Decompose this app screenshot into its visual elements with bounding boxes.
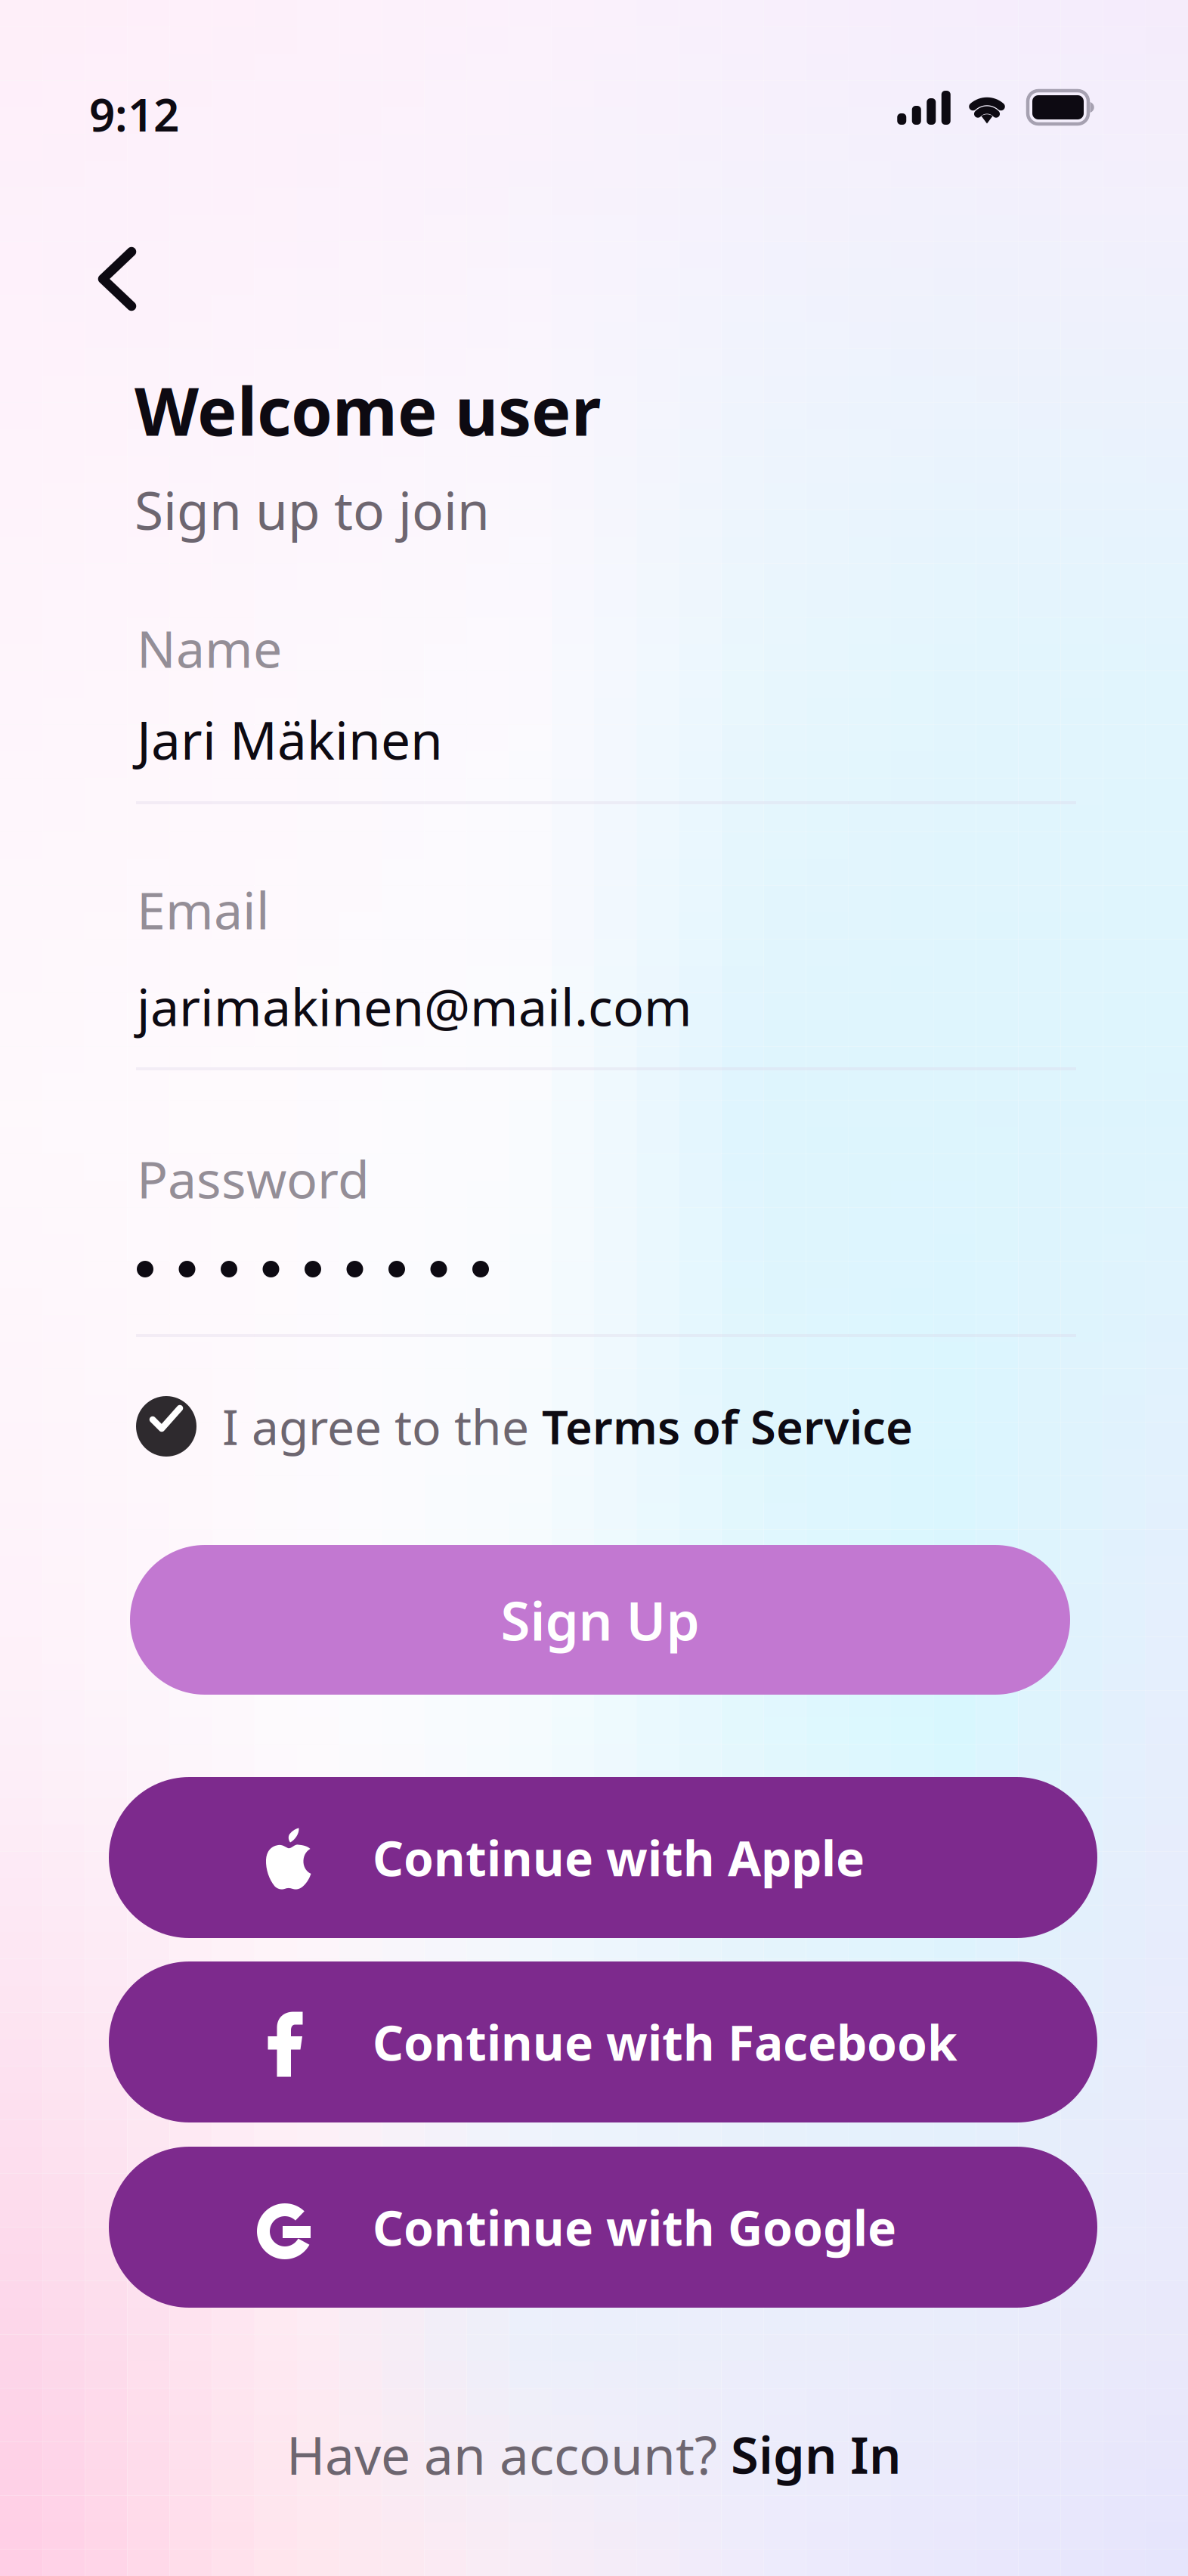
staticText: Terms of Service [542,1396,913,1457]
staticText: Continue with Apple [373,1825,865,1890]
staticText: Password [137,1144,370,1213]
staticText: Jari Mäkinen [137,704,443,774]
staticText: I agree to the [222,1394,542,1458]
staticText: Have an account? [286,2420,731,2489]
staticText: Continue with Google [373,2195,896,2259]
button[interactable]: Continue with Apple [0,0,988,161]
staticText: Name [137,614,282,682]
staticText: 9:12 [89,84,179,144]
button[interactable]: Back [0,0,113,113]
button[interactable]: Continue with Facebook [0,0,988,161]
staticText: Continue with Facebook [373,2010,958,2074]
staticText: Sign In [731,2421,902,2488]
staticText: Email [137,875,270,944]
staticText: Sign Up [501,1584,699,1655]
button[interactable]: Sign Up [0,0,940,150]
staticText: Sign up to join [135,475,490,544]
button[interactable]: Continue with Google [0,0,988,161]
staticText: jarimakinen@mail.com [137,972,692,1040]
button[interactable]: Have an account? [0,0,1188,83]
staticText: Welcome user [135,366,601,454]
